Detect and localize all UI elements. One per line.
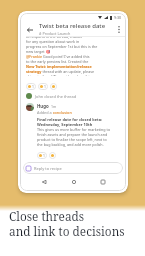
button[interactable]: Reply to recipe	[23, 162, 123, 174]
button[interactable]: More options	[113, 24, 124, 35]
button[interactable]: 1	[26, 83, 36, 90]
staticText: 9:30	[114, 15, 122, 20]
button[interactable]: Home	[68, 176, 79, 187]
staticText: # Product Launch	[39, 31, 71, 36]
staticText: This gives us more buffer for marketing …	[37, 127, 111, 147]
staticText: 1	[44, 84, 46, 89]
staticText: Hugo	[37, 103, 49, 109]
staticText: no rush to respond in the thread, thanks…	[26, 36, 98, 76]
staticText: Added a conclusion	[37, 110, 72, 115]
staticText: 1	[43, 153, 45, 158]
staticText: 1m	[51, 104, 57, 109]
staticText: John closed the thread	[35, 94, 77, 99]
button[interactable]: 1	[37, 152, 47, 159]
button[interactable]: Recents	[97, 176, 108, 187]
button[interactable]: 1	[38, 83, 48, 90]
button[interactable]: Back	[23, 23, 36, 36]
staticText: Close threads and link to decisions	[9, 208, 125, 240]
staticText: 1	[32, 84, 34, 89]
button[interactable]	[49, 152, 56, 159]
button[interactable]	[50, 83, 57, 90]
staticText: Final release date for closed beta: Wedn…	[37, 117, 103, 127]
staticText: Twist beta release date	[39, 22, 106, 30]
button[interactable]: Back	[38, 176, 49, 187]
staticText: Reply to recipe	[34, 166, 62, 171]
